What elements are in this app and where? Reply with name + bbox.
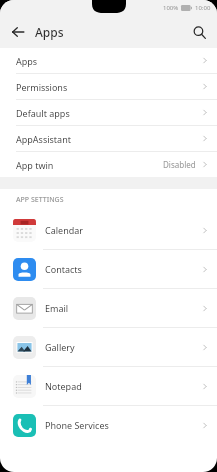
staticText: Permissions xyxy=(16,81,68,93)
button[interactable]: Gallery xyxy=(0,328,217,366)
staticText: App twin xyxy=(16,159,54,171)
staticText: Phone Services xyxy=(45,419,109,431)
button[interactable]: Back xyxy=(6,20,30,44)
button[interactable]: Calendar xyxy=(0,211,217,249)
staticText: Gallery xyxy=(45,341,75,353)
button[interactable]: Notepad xyxy=(0,367,217,405)
button[interactable]: Contacts xyxy=(0,250,217,288)
staticText: APP SETTINGS xyxy=(16,195,64,205)
button[interactable]: Phone Services xyxy=(0,406,217,444)
button[interactable]: Email xyxy=(0,289,217,327)
button[interactable]: Search xyxy=(187,20,211,44)
button[interactable]: Default apps xyxy=(0,100,217,125)
staticText: Contacts xyxy=(45,263,82,275)
staticText: Default apps xyxy=(16,107,70,119)
staticText: 10:00 xyxy=(195,4,211,12)
staticText: 100% xyxy=(163,4,179,12)
staticText: Apps xyxy=(16,55,38,67)
staticText: Email xyxy=(45,302,69,314)
button[interactable]: AppAssistant xyxy=(0,126,217,151)
staticText: Disabled xyxy=(163,159,196,170)
button[interactable]: Apps xyxy=(0,48,217,73)
staticText: Calendar xyxy=(45,224,83,236)
staticText: Notepad xyxy=(45,380,82,392)
button[interactable]: App twin xyxy=(0,152,217,177)
button[interactable]: Permissions xyxy=(0,74,217,99)
staticText: AppAssistant xyxy=(16,133,71,145)
staticText: Apps xyxy=(35,24,64,40)
